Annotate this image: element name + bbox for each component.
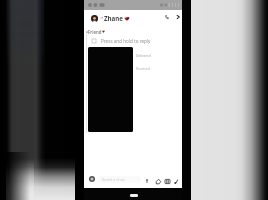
- button[interactable]: Voice message: [143, 177, 151, 185]
- staticText: Send a chat: [102, 177, 125, 183]
- staticText: Zhane: [104, 14, 124, 22]
- button[interactable]: Home: [130, 194, 138, 197]
- button[interactable]: Friend: [86, 29, 105, 34]
- staticText: Friend: [88, 29, 102, 34]
- button[interactable]: Gallery: [163, 177, 171, 185]
- button[interactable]: Press and hold to reply: [92, 38, 151, 44]
- staticText: Delivered: [136, 53, 151, 57]
- button[interactable]: Zhane: [100, 14, 132, 22]
- staticText: Press and hold to reply: [101, 38, 151, 44]
- button[interactable]: Photo message: [88, 47, 133, 132]
- staticText: Received: [136, 66, 150, 70]
- button[interactable]: Stickers: [154, 177, 162, 185]
- button[interactable]: Camera: [89, 176, 95, 182]
- button[interactable]: Send a chat: [98, 176, 141, 183]
- button[interactable]: Video call: [173, 12, 182, 21]
- button[interactable]: Audio call: [162, 12, 171, 21]
- button[interactable]: GIF: [172, 177, 180, 185]
- button[interactable]: Profile photo: [91, 15, 98, 22]
